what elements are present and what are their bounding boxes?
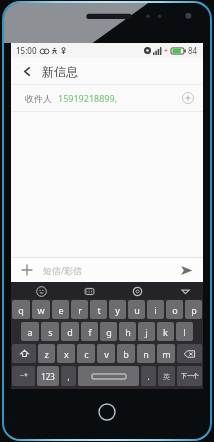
button[interactable]: t	[90, 300, 107, 319]
staticText: 新信息	[42, 64, 78, 79]
button[interactable]: 收件人	[11, 85, 203, 111]
staticText: s	[48, 326, 53, 338]
button[interactable]: Home	[98, 403, 116, 421]
button[interactable]: Emoji	[33, 283, 49, 299]
button[interactable]: l	[176, 322, 193, 341]
button[interactable]: m	[157, 344, 175, 363]
button[interactable]: y	[109, 300, 126, 319]
staticText: 84	[188, 45, 198, 56]
staticText: 短信/彩信	[43, 264, 83, 276]
button[interactable]: Space	[78, 366, 139, 386]
staticText: g	[106, 326, 112, 338]
staticText: 123	[41, 371, 55, 382]
button[interactable]: k	[157, 322, 174, 341]
staticText: p	[191, 304, 197, 316]
button[interactable]: z	[38, 344, 55, 363]
staticText: t	[97, 304, 101, 316]
staticText: v	[104, 348, 109, 360]
button[interactable]: v	[97, 344, 115, 363]
button[interactable]: Hide keyboard	[177, 283, 193, 299]
staticText: 15:00	[16, 45, 37, 56]
button[interactable]: Send	[175, 259, 197, 281]
button[interactable]: w	[32, 300, 50, 319]
button[interactable]: q	[12, 300, 30, 319]
staticText: 15919218899,	[58, 92, 118, 104]
staticText: a	[27, 326, 33, 338]
button[interactable]: g	[100, 322, 117, 341]
button[interactable]: s	[41, 322, 59, 341]
button[interactable]: .	[141, 366, 156, 386]
staticText: j	[145, 326, 148, 338]
button[interactable]: Keyboard layout	[81, 283, 97, 299]
button[interactable]: 下一个	[177, 366, 202, 386]
button[interactable]: Add attachment	[17, 260, 37, 280]
button[interactable]: i	[147, 300, 164, 319]
staticText: l	[183, 326, 186, 338]
staticText: f	[88, 326, 92, 338]
staticText: u	[134, 304, 140, 316]
staticText: ~*	[20, 371, 28, 381]
button[interactable]: ,	[61, 366, 76, 386]
staticText: y	[115, 304, 120, 316]
staticText: d	[67, 326, 73, 338]
button[interactable]: d	[61, 322, 79, 341]
button[interactable]: Shift	[12, 344, 36, 363]
button[interactable]: Backspace	[177, 344, 202, 363]
staticText: c	[84, 348, 89, 360]
button[interactable]: h	[119, 322, 136, 341]
staticText: 下一个	[181, 372, 199, 380]
button[interactable]: Add contact	[180, 90, 196, 106]
staticText: ,	[67, 371, 70, 382]
button[interactable]: f	[81, 322, 98, 341]
button[interactable]: j	[138, 322, 155, 341]
button[interactable]: p	[185, 300, 202, 319]
button[interactable]: Settings	[129, 283, 145, 299]
staticText: .	[147, 371, 150, 382]
staticText: +	[164, 46, 169, 56]
staticText: r	[78, 304, 82, 316]
button[interactable]: n	[137, 344, 155, 363]
button[interactable]: u	[128, 300, 145, 319]
staticText: o	[172, 304, 178, 316]
staticText: 收件人	[25, 93, 52, 104]
staticText: x	[64, 348, 69, 360]
staticText: e	[58, 304, 64, 316]
button[interactable]: 123	[37, 366, 59, 386]
button[interactable]: e	[52, 300, 69, 319]
button[interactable]: Symbols	[12, 366, 35, 386]
staticText: z	[44, 348, 49, 360]
button[interactable]: x	[57, 344, 75, 363]
button[interactable]: a	[21, 322, 39, 341]
button[interactable]: r	[71, 300, 88, 319]
staticText: n	[143, 348, 149, 360]
button[interactable]: o	[166, 300, 183, 319]
staticText: 英	[163, 372, 170, 381]
staticText: m	[162, 348, 171, 360]
button[interactable]: Back	[17, 61, 37, 81]
staticText: q	[18, 304, 24, 316]
button[interactable]: c	[77, 344, 95, 363]
button[interactable]: 英	[158, 366, 175, 386]
staticText: h	[125, 326, 131, 338]
staticText: b	[123, 348, 129, 360]
staticText: i	[154, 304, 157, 316]
staticText: w	[37, 304, 45, 316]
staticText: k	[163, 326, 168, 338]
button[interactable]: b	[117, 344, 135, 363]
